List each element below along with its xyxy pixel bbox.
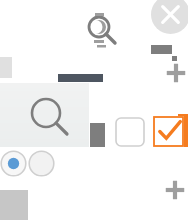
button[interactable]: Add (165, 62, 187, 84)
button[interactable]: Selected option (0, 150, 27, 177)
button[interactable]: Add item (164, 179, 186, 201)
button[interactable]: Unchecked checkbox (115, 117, 145, 147)
button[interactable]: Search (84, 12, 120, 48)
button[interactable]: Search panel (0, 83, 89, 147)
button[interactable]: Checked checkbox (153, 116, 184, 147)
button[interactable]: Unselected option (28, 150, 55, 177)
button[interactable]: Close (151, 0, 188, 34)
